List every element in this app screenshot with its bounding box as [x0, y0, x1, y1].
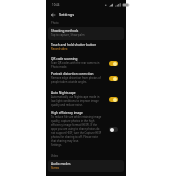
- staticText: Remove edge distortion from photos of pe…: [51, 76, 102, 84]
- button[interactable]: Toggle: [109, 76, 118, 81]
- button[interactable]: Back: [49, 11, 56, 18]
- button[interactable]: Audio modes: [48, 160, 124, 172]
- staticText: Audio modes: [51, 162, 71, 166]
- button[interactable]: Toggle: [109, 97, 118, 102]
- staticText: Record video: [51, 47, 68, 51]
- staticText: Settings: [59, 12, 75, 17]
- staticText: Photo: [51, 21, 59, 25]
- staticText: QR code scanning: [51, 57, 78, 61]
- staticText: Stereo: [51, 166, 60, 170]
- button[interactable]: Shooting methods: [48, 27, 124, 40]
- button[interactable]: Toggle: [109, 127, 118, 132]
- staticText: Portrait distortion correction: [51, 72, 94, 76]
- staticText: Scan QR codes with the rear camera in Ph…: [51, 61, 102, 69]
- staticText: Video: [51, 154, 59, 158]
- button[interactable]: High efficiency image: [48, 109, 124, 149]
- staticText: Automatically use Nightscape mode in low…: [51, 95, 102, 107]
- staticText: Tap to capture, Show palm: [51, 33, 85, 37]
- staticText: Auto Nightscape: [51, 91, 76, 95]
- staticText: 10:44: [52, 3, 60, 7]
- staticText: High efficiency image: [51, 111, 83, 115]
- button[interactable]: QR code scanning: [48, 53, 124, 71]
- staticText: To reduce file size while retaining imag…: [51, 115, 102, 147]
- button[interactable]: Auto Nightscape: [48, 86, 124, 109]
- button[interactable]: Touch and hold shutter button: [48, 40, 124, 53]
- button[interactable]: Portrait distortion correction: [48, 71, 124, 86]
- button[interactable]: Toggle: [109, 61, 118, 66]
- staticText: Touch and hold shutter button: [51, 43, 97, 47]
- staticText: Shooting methods: [51, 29, 79, 33]
